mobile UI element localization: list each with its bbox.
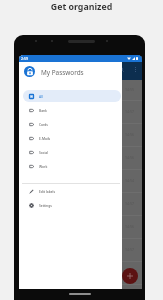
staticText: Settings	[39, 203, 52, 207]
button[interactable]: 14:57	[19, 101, 142, 124]
button[interactable]: 14:56	[19, 124, 142, 147]
staticText: Bank	[39, 108, 47, 112]
button[interactable]: More options	[132, 66, 139, 73]
button[interactable]: All	[23, 90, 121, 102]
button[interactable]: 14:56	[19, 147, 142, 170]
button[interactable]: Settings	[23, 199, 121, 211]
button[interactable]: Add password	[122, 268, 138, 284]
button[interactable]: 14:55	[19, 262, 142, 285]
button[interactable]: E-Mails	[23, 132, 121, 144]
staticText: Cards	[39, 122, 48, 126]
button[interactable]: 14:56	[19, 216, 142, 239]
button[interactable]: Social	[23, 146, 121, 158]
button[interactable]: Cards	[23, 118, 121, 130]
button[interactable]: Edit labels	[23, 185, 121, 197]
staticText: My Passwords	[41, 68, 84, 77]
staticText: 2:59	[21, 56, 28, 61]
button[interactable]: Bank	[23, 104, 121, 116]
button[interactable]: 14:54	[19, 170, 142, 193]
staticText: All	[39, 94, 43, 98]
button[interactable]: 14:57	[19, 193, 142, 216]
staticText: Social	[39, 150, 49, 154]
button[interactable]: Work	[23, 160, 121, 172]
button[interactable]: 14:57	[19, 239, 142, 262]
staticText: Get organized	[0, 1, 163, 13]
button[interactable]: Search	[118, 66, 125, 73]
staticText: E-Mails	[39, 136, 51, 140]
staticText: 14:55	[125, 270, 134, 275]
staticText: Edit labels	[39, 189, 56, 193]
staticText: Work	[39, 164, 48, 168]
button[interactable]: 14:55	[19, 80, 142, 101]
